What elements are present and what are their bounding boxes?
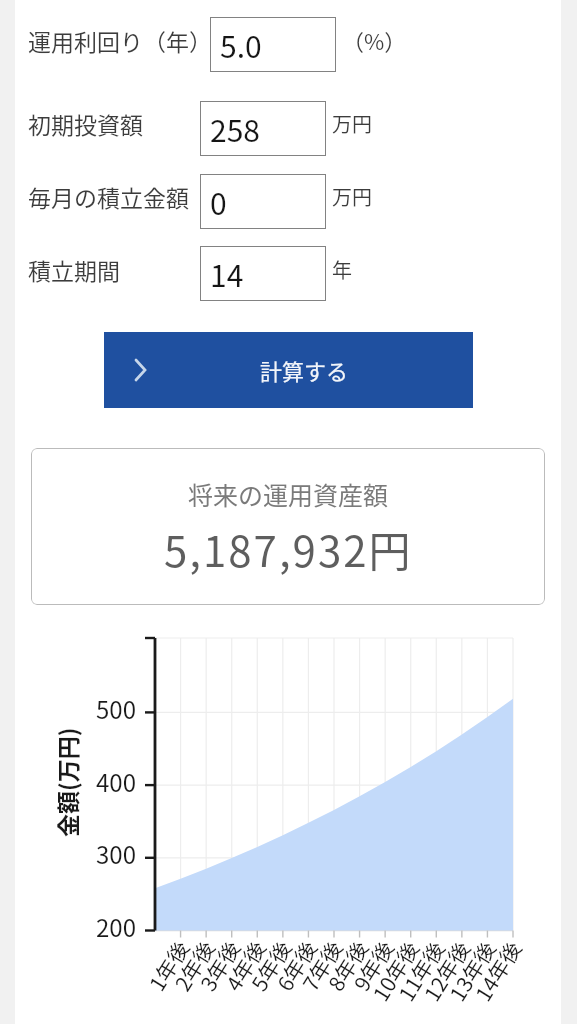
button[interactable]: 将来の運用資産額	[31, 448, 545, 605]
button[interactable]: 14	[200, 246, 326, 301]
staticText: 運用利回り（年）	[28, 24, 212, 57]
staticText: 14	[210, 252, 244, 295]
button[interactable]: 5.0	[210, 17, 336, 72]
staticText: 5.0	[220, 23, 262, 66]
staticText: 年	[332, 255, 352, 284]
staticText: 万円	[332, 182, 372, 211]
button[interactable]: 0	[200, 174, 326, 229]
staticText: 5,187,932円	[164, 518, 413, 579]
staticText: 将来の運用資産額	[188, 476, 389, 512]
staticText: 0	[210, 180, 227, 223]
button[interactable]: 258	[200, 101, 326, 156]
staticText: 万円	[332, 109, 372, 138]
button[interactable]: Calculate	[104, 332, 473, 408]
staticText: 積立期間	[28, 253, 120, 286]
other: Calculate	[134, 359, 147, 381]
staticText: 初期投資額	[28, 107, 143, 140]
staticText: 258	[210, 107, 260, 150]
staticText: 計算する	[260, 354, 349, 386]
staticText: （%）	[342, 24, 407, 56]
staticText: 毎月の積立金額	[28, 180, 189, 213]
